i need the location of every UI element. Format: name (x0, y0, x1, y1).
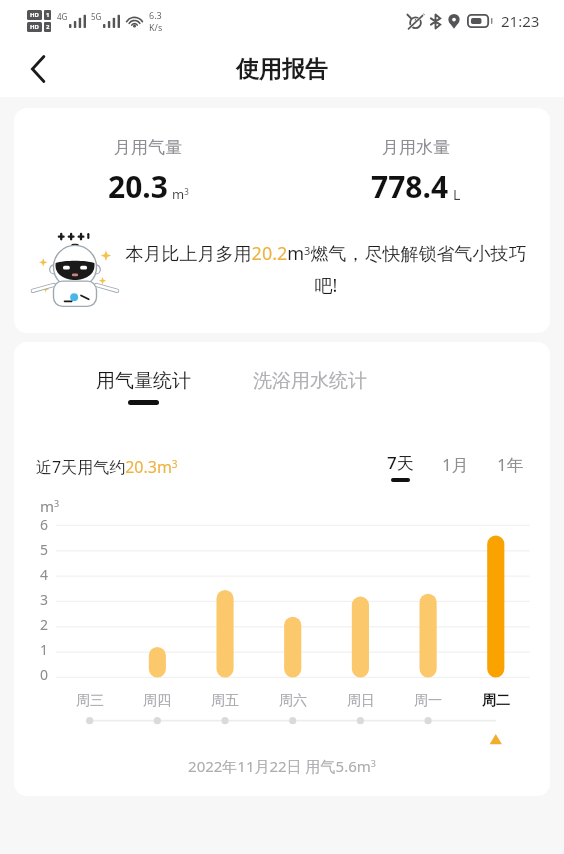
staticText: 月用气量 (114, 137, 182, 158)
staticText: 5G (91, 11, 102, 22)
staticText: 用气量统计 (96, 369, 191, 393)
button[interactable]: 7天 (385, 449, 416, 484)
staticText: K/s (149, 21, 163, 33)
button[interactable]: 周二 (462, 688, 530, 714)
button[interactable]: 洗浴用水统计 (249, 367, 371, 402)
button[interactable]: 周五 (191, 688, 259, 714)
staticText: 洗浴用水统计 (253, 369, 367, 393)
staticText: 6 (40, 515, 49, 534)
staticText: 5 (40, 540, 49, 559)
staticText: 7天 (387, 451, 414, 474)
button[interactable]: 用气量统计 (92, 367, 195, 407)
button[interactable]: 1月 (440, 451, 471, 482)
button[interactable]: Back (14, 45, 62, 93)
staticText: 周二 (482, 692, 510, 710)
staticText: 2022年11月22日 用气5.6m3 (34, 756, 530, 776)
staticText: HD (30, 23, 39, 31)
staticText: 21:23 (501, 11, 540, 31)
staticText: HD (30, 11, 39, 19)
staticText: 4 (40, 565, 49, 584)
staticText: 周一 (414, 692, 442, 710)
staticText: 0 (40, 665, 49, 684)
staticText: 1 (40, 640, 49, 659)
staticText: 周日 (347, 692, 375, 710)
staticText: 3 (40, 590, 49, 609)
staticText: m3 (172, 185, 189, 203)
staticText: 778.4 (371, 166, 449, 207)
staticText: 使用报告 (236, 55, 328, 84)
staticText: 2 (46, 23, 50, 31)
button[interactable]: 周日 (327, 688, 395, 714)
staticText: 本月比上月多用20.2m3燃气，尽快解锁省气小技巧吧! (124, 241, 528, 297)
button[interactable]: 1年 (495, 451, 526, 482)
staticText: m3 (40, 496, 60, 516)
staticText: 周六 (279, 692, 307, 710)
button[interactable]: 周四 (123, 688, 191, 714)
staticText: 近7天用气约20.3m3 (36, 456, 178, 478)
button[interactable]: 周六 (259, 688, 327, 714)
button[interactable]: 周一 (394, 688, 462, 714)
staticText: 周四 (143, 692, 171, 710)
staticText: 2 (40, 615, 49, 634)
staticText: 6.3 (149, 9, 162, 21)
staticText: 20.3 (108, 166, 168, 207)
staticText: L (453, 185, 461, 204)
staticText: 1年 (497, 453, 524, 476)
staticText: 周三 (76, 692, 104, 710)
staticText: 月用水量 (382, 137, 450, 158)
staticText: 4G (57, 11, 68, 22)
staticText: 周五 (211, 692, 239, 710)
staticText: 1月 (442, 453, 469, 476)
staticText: 1 (46, 11, 50, 19)
button[interactable]: 周三 (56, 688, 124, 714)
